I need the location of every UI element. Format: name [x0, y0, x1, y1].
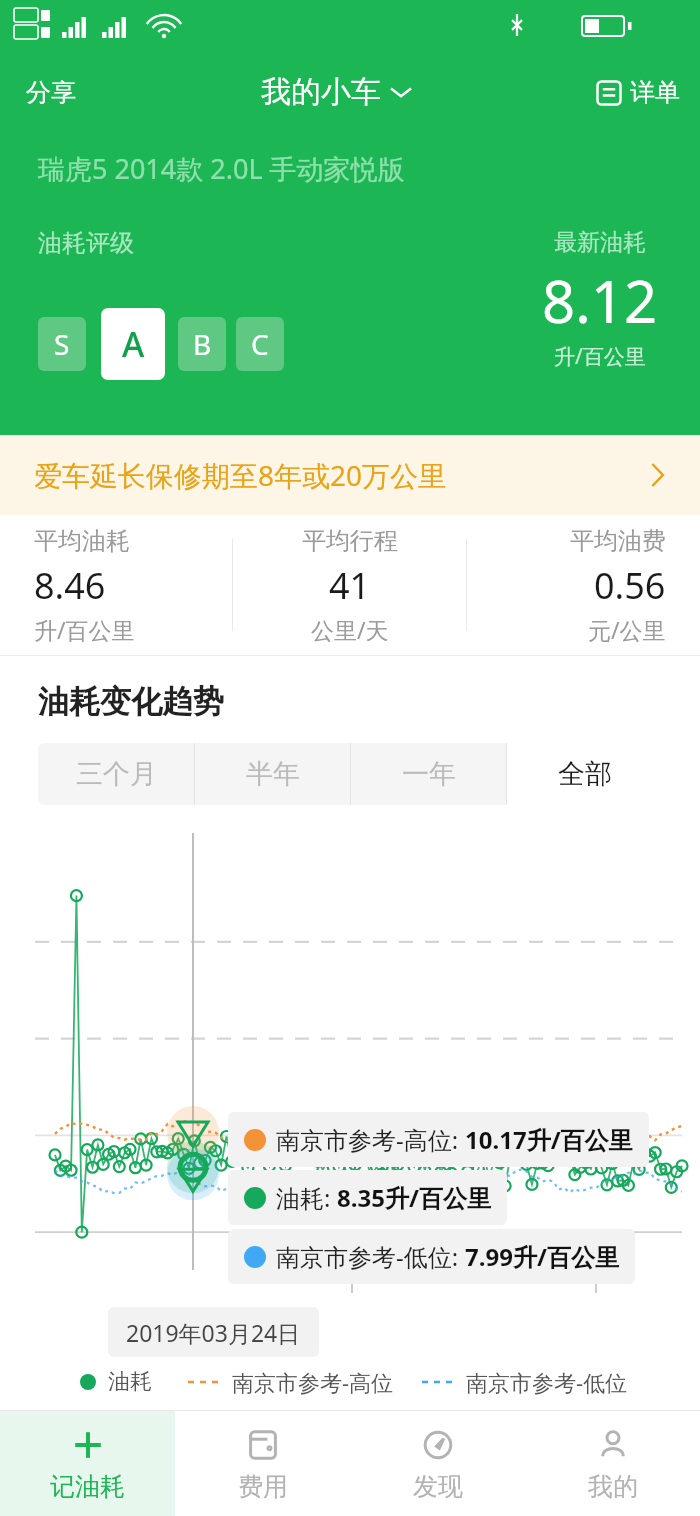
staticText: 油耗: [276, 1181, 337, 1214]
staticText: 三个月 [76, 757, 157, 791]
staticText: 我的 [588, 1471, 638, 1502]
staticText: 半年 [246, 757, 300, 791]
staticText: 一年 [402, 757, 456, 791]
staticText: 8.46 [34, 561, 106, 610]
button[interactable]: 费用 [175, 1411, 350, 1516]
staticText: 南京市参考-高位: [276, 1123, 465, 1156]
staticText: 平均油耗 [34, 526, 130, 556]
staticText: B [193, 325, 212, 363]
button[interactable]: 详单 [592, 73, 684, 112]
staticText: 详单 [630, 77, 680, 108]
button[interactable]: 全部 [507, 743, 662, 805]
staticText: 元/公里 [588, 614, 666, 645]
staticText: S [54, 325, 70, 363]
button[interactable]: 爱车延长保修期至8年或20万公里 [0, 435, 700, 515]
button[interactable]: S [38, 317, 86, 371]
button[interactable]: 分享 [22, 73, 80, 112]
staticText: 油耗评级 [38, 228, 134, 258]
staticText: 7.99升/百公里 [465, 1240, 619, 1273]
button[interactable]: 记油耗 [0, 1411, 175, 1516]
staticText: 公里/天 [311, 614, 389, 645]
staticText: 41 [329, 561, 371, 610]
staticText: 8.12 [542, 261, 658, 340]
staticText: 南京市参考-高位 [232, 1367, 394, 1397]
staticText: 记油耗 [50, 1471, 125, 1502]
button[interactable]: 一年 [351, 743, 506, 805]
staticText: 油耗 [108, 1368, 152, 1396]
staticText: 油耗变化趋势 [38, 682, 224, 721]
button[interactable]: C [236, 317, 284, 371]
button[interactable]: 发现 [350, 1411, 525, 1516]
staticText: 瑞虎5 2014款 2.0L 手动家悦版 [38, 150, 405, 187]
button[interactable]: 我的小车 [255, 69, 417, 115]
button[interactable]: 半年 [195, 743, 350, 805]
staticText: 费用 [238, 1471, 288, 1502]
staticText: 平均行程 [302, 526, 398, 556]
button[interactable]: A [101, 308, 165, 380]
staticText: 升/百公里 [554, 342, 646, 371]
staticText: 0.56 [594, 561, 666, 610]
staticText: A [122, 321, 145, 367]
staticText: 发现 [413, 1471, 463, 1502]
staticText: C [251, 325, 269, 363]
button[interactable]: 我的 [525, 1411, 700, 1516]
button[interactable]: 三个月 [38, 743, 194, 805]
staticText: 分享 [26, 77, 76, 108]
staticText: 10.17升/百公里 [465, 1123, 633, 1156]
button[interactable]: B [178, 317, 226, 371]
staticText: 爱车延长保修期至8年或20万公里 [34, 456, 447, 494]
staticText: 平均油费 [570, 526, 666, 556]
staticText: 最新油耗 [554, 228, 646, 257]
staticText: 2019年03月24日 [126, 1317, 301, 1347]
staticText: 全部 [558, 757, 612, 791]
staticText: 南京市参考-低位 [466, 1367, 628, 1397]
staticText: 我的小车 [261, 73, 381, 111]
staticText: 升/百公里 [34, 614, 135, 645]
staticText: 南京市参考-低位: [276, 1240, 465, 1273]
staticText: 8.35升/百公里 [337, 1181, 491, 1214]
